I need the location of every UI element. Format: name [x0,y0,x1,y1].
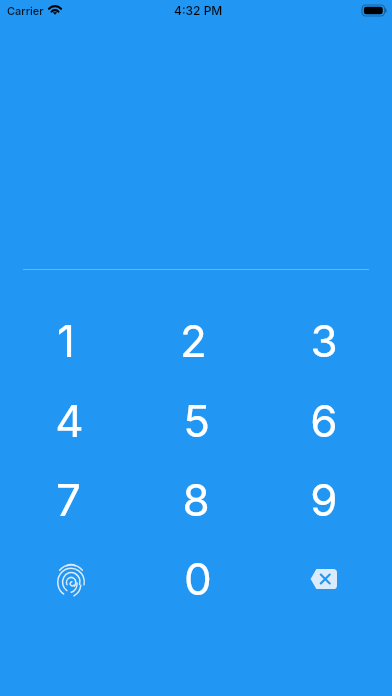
staticText: 2 [180,314,207,367]
button[interactable]: 3 [260,300,387,380]
staticText: 6 [310,394,338,447]
staticText: 4:32 PM [174,3,223,18]
staticText: 3 [310,314,338,367]
button[interactable]: 6 [260,380,387,460]
button[interactable]: 8 [133,460,260,539]
staticText: 0 [184,552,212,605]
button[interactable]: 7 [5,460,133,539]
button[interactable]: 0 [133,539,260,618]
staticText: 1 [57,314,75,367]
button[interactable]: Unlock with fingerprint [5,539,133,618]
button[interactable]: 2 [133,300,260,380]
button[interactable]: 9 [260,460,387,539]
staticText: 9 [310,473,338,526]
staticText: 5 [183,394,210,447]
button[interactable]: Delete [260,539,387,618]
staticText: Carrier [7,4,44,17]
staticText: 7 [56,473,81,526]
button[interactable]: 1 [5,300,133,380]
button[interactable]: 4 [5,380,133,460]
staticText: 4 [55,394,84,447]
staticText: 8 [182,473,210,526]
button[interactable]: 5 [133,380,260,460]
